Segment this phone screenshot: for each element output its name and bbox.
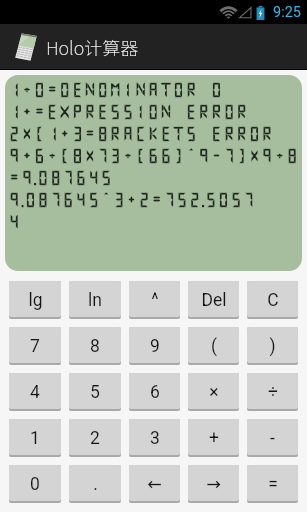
button[interactable]: ln (69, 281, 121, 319)
staticText: 1+=EXPRESSION ERROR (9, 103, 250, 120)
staticText: C (267, 290, 279, 311)
button[interactable]: C (247, 281, 298, 319)
staticText: = (268, 474, 278, 495)
staticText: ln (88, 290, 102, 311)
button[interactable]: ) (247, 327, 298, 365)
button[interactable]: + (188, 419, 239, 457)
button[interactable]: ^ (129, 281, 180, 319)
staticText: ← (147, 474, 162, 494)
staticText: Del (201, 290, 227, 311)
button[interactable]: 0 (9, 465, 61, 503)
staticText: 2 (90, 428, 100, 449)
button[interactable]: ← (129, 465, 180, 503)
staticText: 2×(1+3=BRACKETS ERROR (9, 125, 275, 142)
button[interactable]: × (188, 373, 239, 411)
button[interactable]: → (188, 465, 239, 503)
button[interactable]: 6 (129, 373, 180, 411)
button[interactable]: 5 (69, 373, 121, 411)
staticText: 0 (30, 474, 40, 495)
staticText: 1 (30, 428, 40, 449)
button[interactable]: 3 (129, 419, 180, 457)
button[interactable]: lg (9, 281, 61, 319)
staticText: 9 (150, 336, 160, 357)
button[interactable]: 7 (9, 327, 61, 365)
staticText: ( (211, 336, 217, 357)
button[interactable]: - (247, 419, 298, 457)
button[interactable]: Del (188, 281, 239, 319)
staticText: 4 (30, 382, 40, 403)
button[interactable]: 8 (69, 327, 121, 365)
button[interactable]: . (69, 465, 121, 503)
staticText: → (206, 474, 221, 494)
staticText: . (93, 474, 98, 495)
staticText: 5 (90, 382, 100, 403)
staticText: 9:25 (273, 4, 301, 21)
staticText: 1÷0=DENOMINATOR 0 (9, 81, 224, 98)
staticText: 3 (150, 428, 160, 449)
staticText: Holo计算器 (46, 34, 139, 60)
button[interactable]: = (247, 465, 298, 503)
staticText: ÷ (268, 382, 278, 403)
staticText: lg (28, 290, 43, 311)
staticText: 6 (150, 382, 160, 403)
staticText: × (209, 382, 219, 403)
button[interactable]: 1 (9, 419, 61, 457)
staticText: + (209, 428, 219, 449)
staticText: 8 (90, 336, 100, 357)
button[interactable]: ÷ (247, 373, 298, 411)
button[interactable]: 9 (129, 327, 180, 365)
staticText: 4 (9, 213, 22, 230)
staticText: - (270, 428, 275, 449)
staticText: =9.087645 (9, 169, 114, 186)
button[interactable]: 4 (9, 373, 61, 411)
staticText: ) (269, 336, 276, 357)
button[interactable]: ( (188, 327, 239, 365)
staticText: 9+6÷(8×73÷(66)^9-7)×9÷8 (9, 147, 300, 164)
staticText: ^ (151, 290, 159, 311)
button[interactable]: 2 (69, 419, 121, 457)
staticText: 7 (30, 336, 40, 357)
staticText: 9.087645^3+2=752.5057 (9, 191, 257, 208)
